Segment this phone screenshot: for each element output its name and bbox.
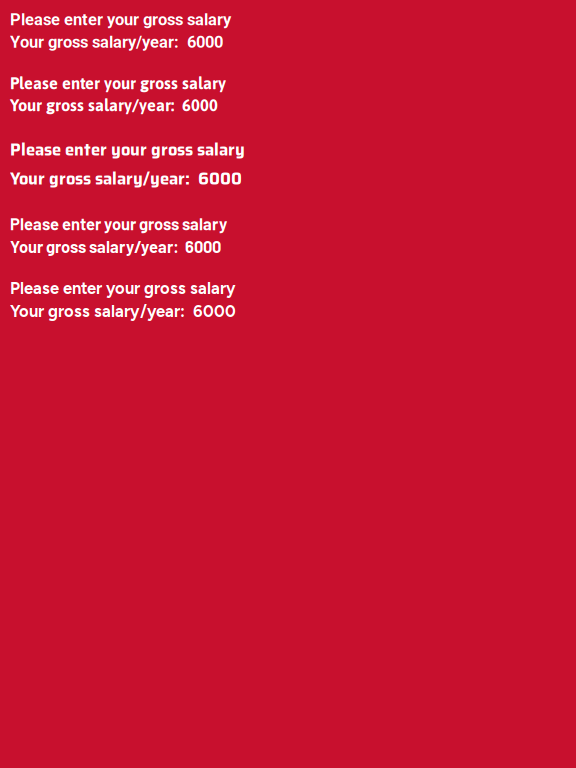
staticText: Your gross salary/year: 6000 [10,236,221,256]
staticText: Your gross salary/year: 6000 [10,32,223,52]
staticText: Your gross salary/year: 6000 [10,96,218,115]
staticText: Please enter your gross salary [10,137,245,163]
staticText: Your gross salary/year: 6000 [10,301,236,321]
staticText: Please enter your gross salary [10,278,236,298]
staticText: Please enter your gross salary [10,214,227,233]
staticText: Please enter your gross salary [10,10,231,29]
staticText: Please enter your gross salary [10,74,226,93]
staticText: Your gross salary/year: 6000 [10,166,242,192]
